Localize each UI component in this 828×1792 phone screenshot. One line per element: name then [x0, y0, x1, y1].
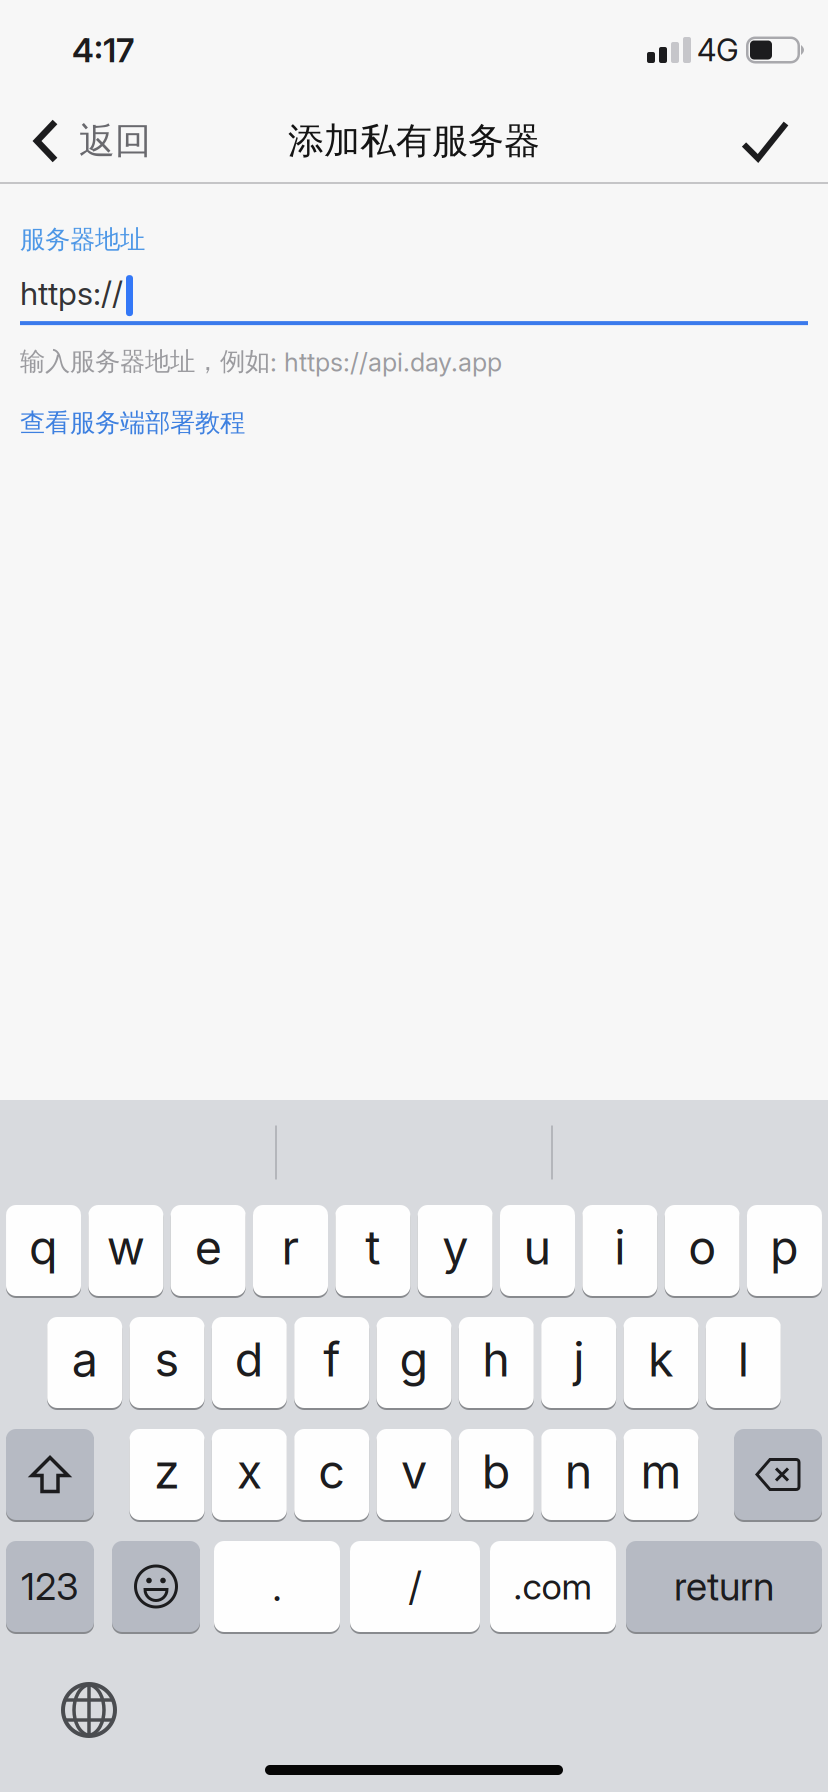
- staticText: g: [399, 1332, 428, 1387]
- staticText: z: [154, 1444, 180, 1499]
- staticText: 服务器地址: [20, 224, 145, 255]
- button[interactable]: 服务器地址: [20, 255, 808, 325]
- staticText: v: [401, 1444, 427, 1499]
- button[interactable]: .com: [490, 1541, 616, 1632]
- button[interactable]: g: [376, 1317, 451, 1408]
- staticText: i: [614, 1220, 625, 1275]
- button[interactable]: i: [582, 1205, 657, 1296]
- button[interactable]: x: [212, 1429, 287, 1520]
- button[interactable]: w: [88, 1205, 163, 1296]
- staticText: 查看服务端部署教程: [20, 407, 245, 438]
- staticText: 123: [21, 1564, 79, 1608]
- button[interactable]: j: [541, 1317, 616, 1408]
- button[interactable]: f: [294, 1317, 369, 1408]
- button[interactable]: s: [129, 1317, 204, 1408]
- button[interactable]: a: [47, 1317, 122, 1408]
- button[interactable]: /: [350, 1541, 480, 1632]
- button[interactable]: n: [541, 1429, 616, 1520]
- staticText: q: [29, 1220, 58, 1275]
- staticText: s: [154, 1332, 179, 1387]
- staticText: 添加私有服务器: [288, 119, 540, 163]
- staticText: .com: [513, 1565, 592, 1608]
- staticText: 4G: [697, 32, 739, 68]
- staticText: w: [107, 1220, 145, 1275]
- button[interactable]: Back: [0, 119, 151, 163]
- button[interactable]: e: [171, 1205, 246, 1296]
- staticText: y: [442, 1220, 468, 1275]
- staticText: d: [235, 1332, 264, 1387]
- button[interactable]: p: [747, 1205, 822, 1296]
- staticText: t: [365, 1220, 380, 1275]
- staticText: 4:17: [72, 30, 134, 70]
- button[interactable]: l: [706, 1317, 781, 1408]
- button[interactable]: .: [214, 1541, 340, 1632]
- staticText: h: [482, 1332, 510, 1387]
- button[interactable]: b: [459, 1429, 534, 1520]
- staticText: r: [281, 1220, 299, 1275]
- staticText: n: [565, 1444, 593, 1499]
- button[interactable]: k: [623, 1317, 698, 1408]
- staticText: u: [523, 1220, 551, 1275]
- staticText: a: [72, 1332, 98, 1387]
- staticText: /: [408, 1563, 421, 1610]
- button[interactable]: h: [459, 1317, 534, 1408]
- staticText: j: [573, 1332, 584, 1387]
- staticText: x: [237, 1444, 262, 1499]
- staticText: c: [318, 1444, 345, 1499]
- button[interactable]: m: [623, 1429, 698, 1520]
- button[interactable]: Next keyboard: [0, 1632, 117, 1738]
- staticText: .: [272, 1563, 281, 1610]
- staticText: k: [648, 1332, 674, 1387]
- staticText: f: [323, 1332, 340, 1387]
- button[interactable]: o: [665, 1205, 740, 1296]
- button[interactable]: 查看服务端部署教程: [20, 407, 245, 438]
- button[interactable]: 123: [6, 1541, 94, 1632]
- button[interactable]: Done: [742, 120, 828, 161]
- staticText: https://: [20, 274, 123, 312]
- staticText: o: [688, 1220, 716, 1275]
- button[interactable]: q: [6, 1205, 81, 1296]
- button[interactable]: y: [418, 1205, 493, 1296]
- button[interactable]: t: [335, 1205, 410, 1296]
- button[interactable]: Delete: [734, 1429, 822, 1520]
- staticText: b: [482, 1444, 511, 1499]
- staticText: e: [195, 1220, 222, 1275]
- staticText: l: [738, 1332, 749, 1387]
- button[interactable]: r: [253, 1205, 328, 1296]
- button[interactable]: Emoji: [112, 1541, 200, 1632]
- button[interactable]: c: [294, 1429, 369, 1520]
- button[interactable]: z: [129, 1429, 204, 1520]
- staticText: 返回: [79, 119, 151, 163]
- staticText: return: [674, 1564, 774, 1609]
- button[interactable]: Shift: [6, 1429, 94, 1520]
- button[interactable]: v: [376, 1429, 451, 1520]
- button[interactable]: d: [212, 1317, 287, 1408]
- button[interactable]: return: [626, 1541, 822, 1632]
- staticText: m: [640, 1444, 681, 1499]
- button[interactable]: u: [500, 1205, 575, 1296]
- staticText: p: [770, 1220, 799, 1275]
- staticText: 输入服务器地址，例如: https://api.day.app: [20, 346, 502, 377]
